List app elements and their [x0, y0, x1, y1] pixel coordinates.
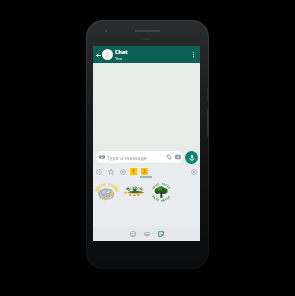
staticText: Type a message — [107, 154, 147, 161]
staticText: Chat — [115, 48, 128, 55]
button[interactable]: Profile photo — [102, 49, 113, 60]
button[interactable]: Emoji — [128, 229, 137, 238]
button[interactable]: More options — [188, 49, 199, 60]
staticText: 1 — [132, 168, 135, 175]
button[interactable]: Fish sticker — [121, 180, 148, 207]
button[interactable]: Tree sticker — [148, 180, 175, 207]
button[interactable]: Add stickers — [190, 168, 198, 176]
button[interactable]: Recents — [95, 168, 103, 176]
button[interactable]: GIF — [142, 229, 151, 238]
button[interactable]: Brainstorming sticker — [94, 180, 121, 207]
staticText: You — [115, 56, 123, 62]
button[interactable]: Record voice message — [185, 151, 198, 164]
button[interactable]: Type a message — [96, 151, 183, 163]
button[interactable]: Stickers — [156, 229, 165, 238]
button[interactable]: Back — [94, 51, 102, 59]
button[interactable]: Favourites — [107, 168, 115, 176]
button[interactable]: Sticker pack 1 — [130, 168, 137, 175]
button[interactable]: Popular — [119, 168, 127, 176]
button[interactable]: Sticker pack 2 — [141, 168, 148, 175]
button[interactable]: Attach — [166, 154, 172, 160]
button[interactable]: Camera — [175, 154, 181, 160]
staticText: 2 — [143, 168, 146, 175]
